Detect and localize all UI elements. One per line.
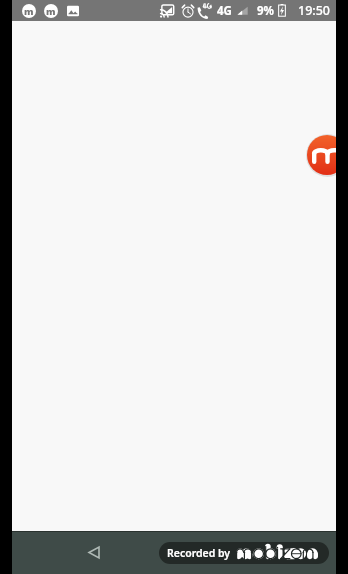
staticText: 9%: [257, 3, 274, 19]
button[interactable]: Mobizen recorder: [307, 135, 336, 175]
staticText: m: [46, 5, 56, 18]
button[interactable]: Back: [77, 535, 111, 569]
staticText: m: [24, 5, 34, 18]
staticText: Recorded by: [167, 546, 231, 560]
staticText: 4G: [217, 3, 232, 19]
staticText: 19:50: [298, 2, 331, 19]
button[interactable]: Recorded by mobizen: [159, 542, 329, 564]
